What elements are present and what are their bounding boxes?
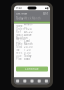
staticText: Month (32, 17, 41, 20)
button[interactable]: Tab (21, 77, 28, 84)
button[interactable]: Tax (14, 48, 50, 51)
button[interactable]: Fees (14, 51, 50, 54)
button[interactable]: Method (14, 39, 50, 42)
staticText: Continue (25, 67, 39, 71)
staticText: Tax (16, 48, 19, 52)
staticText: Today (16, 17, 23, 20)
staticText: Fees (16, 51, 22, 55)
staticText: Plan (16, 57, 22, 61)
staticText: 24.00 (24, 45, 33, 49)
button[interactable]: Due (14, 54, 50, 57)
staticText: Total (16, 45, 22, 49)
staticText: Notify (16, 36, 24, 40)
staticText: Week (24, 17, 31, 20)
button[interactable]: Cycle (14, 42, 50, 45)
staticText: Status (16, 33, 23, 37)
staticText: Name (16, 24, 23, 28)
staticText: 1.20 (24, 48, 31, 52)
staticText: Cycle (16, 42, 23, 46)
button[interactable]: Tab (28, 77, 36, 84)
button[interactable]: Tab (14, 77, 21, 84)
button[interactable]: Notify (14, 36, 50, 39)
button[interactable]: Name (14, 24, 50, 27)
staticText: Method (16, 37, 24, 45)
staticText: 9:41 (16, 6, 23, 10)
staticText: ▪▮ (45, 6, 48, 9)
staticText: Ref (16, 30, 21, 34)
staticText: Month (24, 42, 33, 46)
staticText: Order (16, 27, 24, 31)
button[interactable]: Status (14, 33, 50, 36)
staticText: 0.00 (24, 51, 31, 55)
staticText: Amount (24, 22, 33, 30)
staticText: Due (16, 54, 22, 58)
button[interactable]: Total (14, 45, 50, 48)
staticText: Overview (16, 12, 27, 15)
staticText: 1024 (24, 27, 32, 31)
staticText: Today (24, 54, 31, 58)
staticText: AX-22 (24, 30, 33, 34)
button[interactable]: Ref (14, 30, 50, 33)
staticText: Edit (43, 12, 48, 15)
staticText: On (24, 36, 28, 40)
button[interactable]: Plan (14, 57, 50, 60)
button[interactable]: Tab (43, 77, 50, 84)
staticText: Card (24, 39, 30, 43)
button[interactable]: Tab (36, 77, 43, 84)
staticText: Active (24, 33, 32, 37)
button[interactable]: Continue (16, 66, 48, 71)
button[interactable]: Order (14, 27, 50, 30)
staticText: Basic (24, 57, 30, 61)
